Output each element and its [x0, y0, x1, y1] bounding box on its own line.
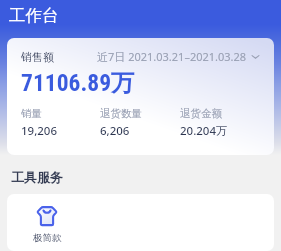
button[interactable]: 销售额: [7, 38, 274, 155]
staticText: 6,206: [100, 123, 130, 139]
staticText: 销售额: [21, 50, 54, 64]
staticText: 71106.89万: [21, 68, 135, 98]
staticText: 退货金额: [180, 107, 222, 120]
staticText: 退货数量: [100, 107, 142, 120]
staticText: 19,206: [21, 123, 58, 139]
staticText: 工作台: [9, 5, 59, 26]
staticText: 销量: [21, 107, 42, 120]
button[interactable]: 近7日 2021.03.21–2021.03.28: [97, 49, 260, 64]
staticText: 近7日 2021.03.21–2021.03.28: [97, 49, 247, 64]
staticText: 极简款: [33, 232, 62, 244]
staticText: 20.204万: [180, 123, 228, 139]
staticText: 工具服务: [11, 169, 63, 185]
button[interactable]: 极简款: [7, 206, 87, 244]
